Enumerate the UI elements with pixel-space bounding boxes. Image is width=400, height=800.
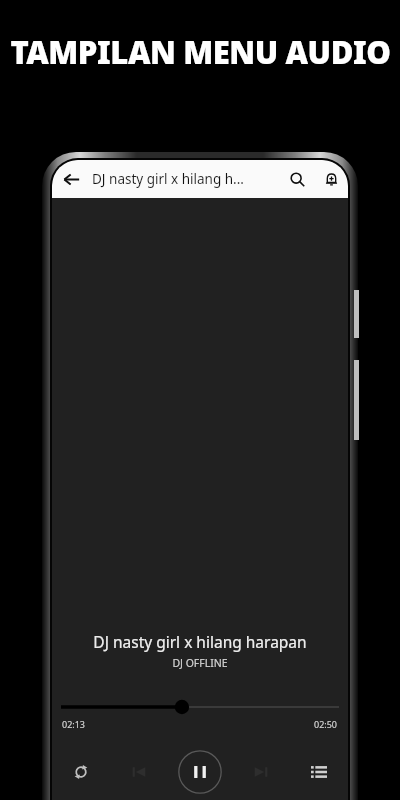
staticText: 02:50 <box>314 718 338 730</box>
button[interactable]: Add alert <box>314 162 348 196</box>
staticText: DJ nasty girl x hilang harapan <box>52 631 348 652</box>
button[interactable]: Back <box>52 160 90 198</box>
button[interactable]: Search <box>280 162 314 196</box>
button[interactable]: Pause <box>176 748 224 796</box>
button[interactable]: Playlist <box>298 751 340 793</box>
staticText: TAMPILAN MENU AUDIO <box>10 31 391 73</box>
staticText: 02:13 <box>62 718 86 730</box>
button[interactable]: Repeat <box>60 751 102 793</box>
staticText: DJ nasty girl x hilang h... <box>92 170 280 188</box>
button[interactable]: Seek bar <box>61 696 339 718</box>
staticText: DJ OFFLINE <box>52 656 348 670</box>
